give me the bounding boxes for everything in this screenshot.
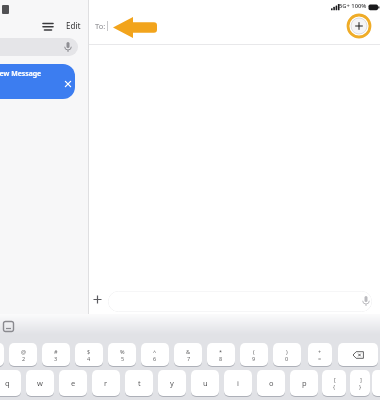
- button[interactable]: w: [26, 370, 54, 396]
- staticText: 2: [22, 355, 26, 362]
- button[interactable]: New Message: [0, 64, 75, 99]
- staticText: 7: [187, 355, 191, 362]
- staticText: w: [37, 378, 43, 388]
- staticText: @: [21, 348, 26, 355]
- staticText: Edit: [66, 20, 81, 31]
- button[interactable]: o: [257, 370, 285, 396]
- staticText: y: [170, 378, 174, 388]
- button[interactable]: u: [191, 370, 219, 396]
- button[interactable]: %: [108, 343, 136, 366]
- staticText: &: [186, 348, 191, 355]
- staticText: 4: [87, 355, 91, 362]
- staticText: o: [269, 378, 274, 388]
- staticText: e: [71, 378, 76, 388]
- button[interactable]: [338, 343, 378, 366]
- button[interactable]: ^: [141, 343, 169, 366]
- staticText: %: [120, 348, 125, 355]
- staticText: +: [318, 348, 322, 355]
- button[interactable]: $: [75, 343, 103, 366]
- button[interactable]: r: [92, 370, 120, 396]
- button[interactable]: p: [290, 370, 318, 396]
- staticText: $: [87, 348, 91, 355]
- staticText: }: [359, 383, 362, 390]
- staticText: 3: [54, 355, 58, 362]
- button[interactable]: [0, 38, 78, 56]
- staticText: (: [253, 348, 255, 355]
- button[interactable]: Edit: [62, 18, 84, 33]
- staticText: 5: [121, 355, 125, 362]
- button[interactable]: #: [42, 343, 70, 366]
- staticText: 8: [219, 355, 223, 362]
- staticText: To:: [95, 21, 106, 31]
- button[interactable]: [91, 293, 104, 306]
- button[interactable]: (: [240, 343, 268, 366]
- button[interactable]: ): [273, 343, 301, 366]
- staticText: t: [138, 378, 141, 388]
- button[interactable]: @: [9, 343, 37, 366]
- button[interactable]: [: [322, 370, 346, 396]
- button[interactable]: i: [224, 370, 252, 396]
- button[interactable]: *: [207, 343, 235, 366]
- button[interactable]: [108, 291, 372, 312]
- staticText: New Message: [0, 69, 42, 79]
- button[interactable]: +: [308, 343, 332, 366]
- staticText: 0: [285, 355, 289, 362]
- button[interactable]: |: [372, 370, 380, 396]
- staticText: i: [237, 378, 239, 388]
- staticText: u: [203, 378, 208, 388]
- button[interactable]: [0, 343, 4, 366]
- staticText: ]: [360, 376, 362, 383]
- staticText: 6: [153, 355, 157, 362]
- button[interactable]: y: [158, 370, 186, 396]
- staticText: =: [318, 355, 322, 362]
- button[interactable]: [40, 20, 56, 33]
- staticText: q: [5, 378, 10, 388]
- button[interactable]: e: [59, 370, 87, 396]
- staticText: *: [219, 348, 223, 355]
- staticText: #: [54, 348, 58, 355]
- button[interactable]: q: [0, 370, 21, 396]
- staticText: 9: [252, 355, 256, 362]
- staticText: 5G+ 100%: [339, 2, 367, 10]
- staticText: r: [104, 378, 108, 388]
- button[interactable]: [346, 13, 372, 39]
- button[interactable]: &: [174, 343, 202, 366]
- staticText: ): [286, 348, 288, 355]
- staticText: ^: [153, 348, 157, 355]
- staticText: p: [302, 378, 307, 388]
- button[interactable]: t: [125, 370, 153, 396]
- button[interactable]: ]: [350, 370, 370, 396]
- staticText: {: [333, 383, 336, 390]
- staticText: [: [334, 376, 336, 383]
